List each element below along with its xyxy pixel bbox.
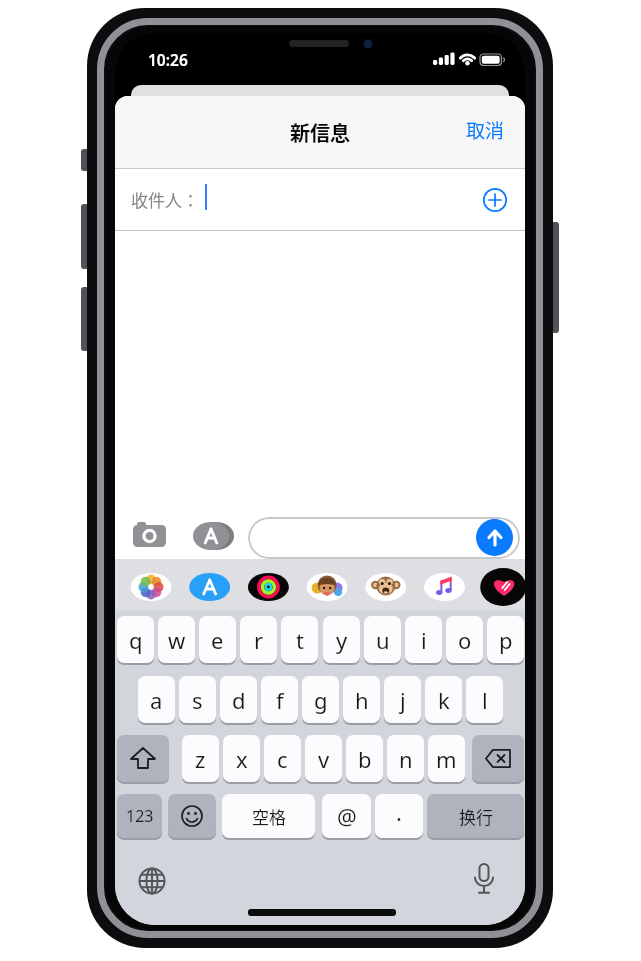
- staticText: x: [236, 744, 248, 774]
- staticText: 收件人：: [131, 187, 199, 212]
- button[interactable]: @: [322, 794, 371, 838]
- button[interactable]: s: [179, 676, 216, 723]
- staticText: u: [376, 625, 390, 655]
- staticText: l: [482, 685, 488, 715]
- button[interactable]: e: [199, 616, 236, 663]
- staticText: b: [358, 744, 372, 774]
- button[interactable]: h: [343, 676, 380, 723]
- button[interactable]: p: [487, 616, 524, 663]
- button[interactable]: [467, 862, 501, 900]
- button[interactable]: [476, 519, 513, 556]
- staticText: n: [399, 744, 413, 774]
- staticText: m: [436, 744, 457, 774]
- staticText: w: [168, 625, 186, 655]
- button[interactable]: l: [466, 676, 503, 723]
- staticText: f: [276, 685, 284, 715]
- button[interactable]: x: [223, 735, 260, 782]
- button[interactable]: t: [281, 616, 318, 663]
- button[interactable]: 123: [117, 794, 162, 838]
- button[interactable]: y: [323, 616, 360, 663]
- staticText: a: [150, 685, 163, 715]
- button[interactable]: 空格: [222, 794, 315, 838]
- button[interactable]: w: [158, 616, 195, 663]
- button[interactable]: [133, 522, 166, 548]
- staticText: y: [336, 625, 348, 655]
- button[interactable]: q: [117, 616, 154, 663]
- staticText: k: [438, 685, 450, 715]
- button[interactable]: .: [375, 794, 423, 838]
- button[interactable]: d: [220, 676, 257, 723]
- staticText: d: [232, 685, 246, 715]
- button[interactable]: [135, 864, 169, 898]
- button[interactable]: a: [138, 676, 175, 723]
- staticText: i: [421, 625, 427, 655]
- button[interactable]: z: [182, 735, 219, 782]
- staticText: 123: [126, 805, 154, 827]
- staticText: z: [195, 744, 206, 774]
- button[interactable]: v: [305, 735, 342, 782]
- staticText: g: [314, 685, 328, 715]
- staticText: q: [129, 625, 143, 655]
- staticText: p: [499, 625, 513, 655]
- button[interactable]: j: [384, 676, 421, 723]
- staticText: t: [296, 625, 304, 655]
- button[interactable]: b: [346, 735, 383, 782]
- staticText: v: [318, 744, 330, 774]
- button[interactable]: [479, 184, 511, 216]
- button[interactable]: n: [387, 735, 424, 782]
- button[interactable]: 取消: [455, 110, 515, 150]
- button[interactable]: m: [428, 735, 465, 782]
- button[interactable]: i: [405, 616, 442, 663]
- staticText: c: [277, 744, 288, 774]
- button[interactable]: [117, 735, 169, 782]
- staticText: .: [396, 797, 402, 827]
- staticText: e: [211, 625, 224, 655]
- staticText: 换行: [459, 804, 493, 829]
- button[interactable]: o: [446, 616, 483, 663]
- button[interactable]: [168, 794, 216, 838]
- button[interactable]: r: [240, 616, 277, 663]
- button[interactable]: c: [264, 735, 301, 782]
- staticText: 新信息: [290, 118, 350, 147]
- staticText: s: [192, 685, 203, 715]
- button[interactable]: [472, 735, 524, 782]
- staticText: o: [458, 625, 472, 655]
- staticText: j: [400, 685, 406, 715]
- staticText: h: [355, 685, 369, 715]
- button[interactable]: k: [425, 676, 462, 723]
- button[interactable]: u: [364, 616, 401, 663]
- staticText: r: [254, 625, 264, 655]
- button[interactable]: 换行: [427, 794, 524, 838]
- button[interactable]: f: [261, 676, 298, 723]
- button[interactable]: [193, 517, 235, 555]
- staticText: 空格: [252, 804, 286, 829]
- staticText: 取消: [466, 116, 505, 144]
- staticText: 10:26: [148, 49, 188, 70]
- staticText: @: [337, 801, 357, 831]
- button[interactable]: g: [302, 676, 339, 723]
